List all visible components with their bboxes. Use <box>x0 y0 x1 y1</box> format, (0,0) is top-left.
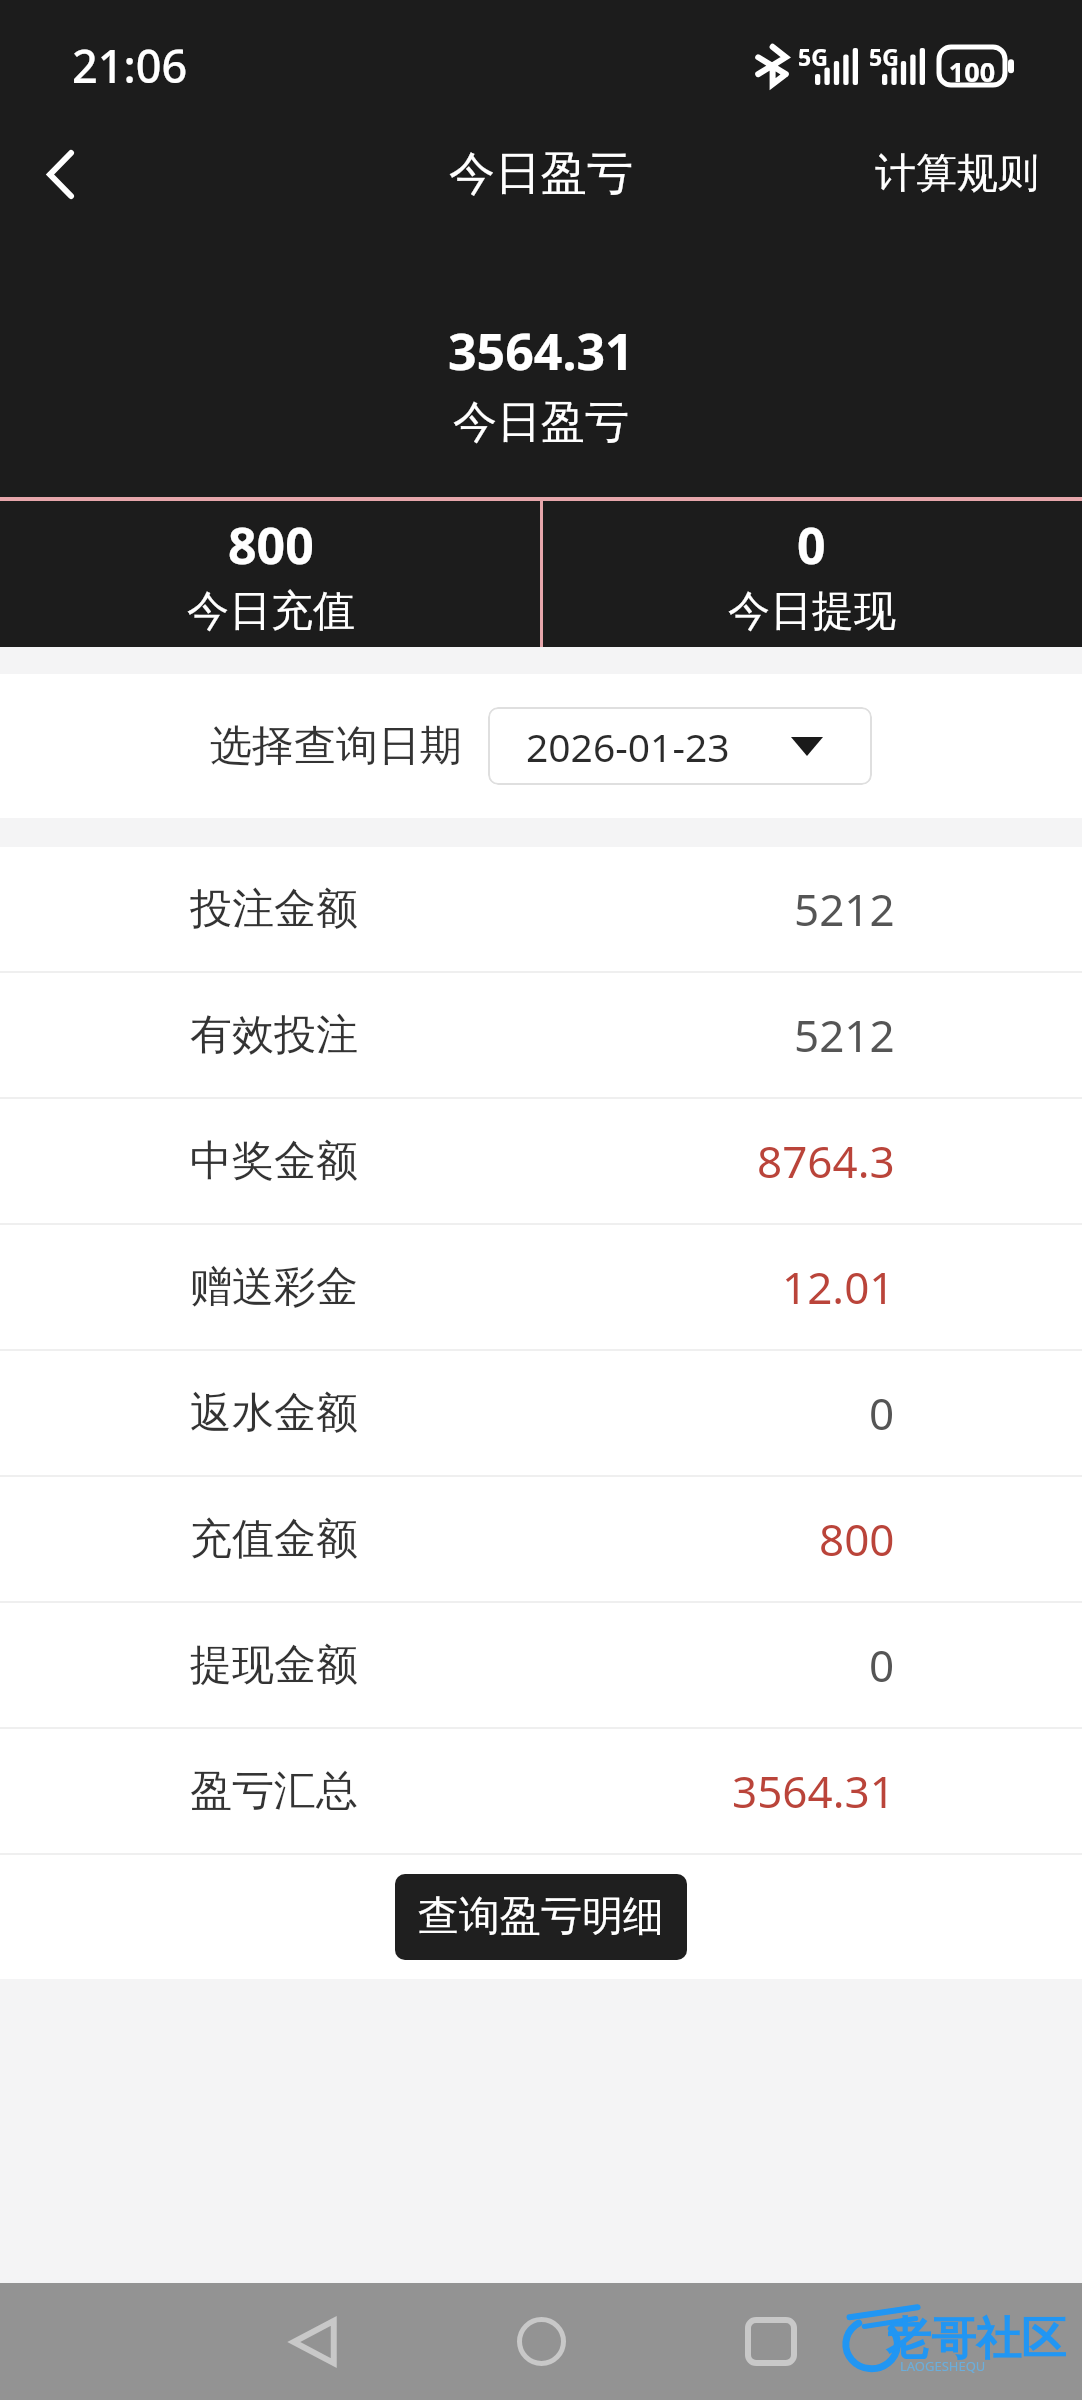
staticText: 100 <box>939 53 1005 90</box>
staticText: 0 <box>797 511 826 567</box>
button[interactable]: Back <box>251 2283 371 2400</box>
button[interactable]: 中奖金额 <box>0 1099 1082 1223</box>
staticText: 今日盈亏 <box>453 395 629 450</box>
button[interactable]: 盈亏汇总 <box>0 1729 1082 1853</box>
staticText: 提现金额 <box>190 1639 358 1692</box>
staticText: 21:06 <box>72 35 188 95</box>
staticText: 3564.31 <box>732 1761 895 1821</box>
button[interactable]: Recent apps <box>711 2283 831 2400</box>
staticText: 5212 <box>794 1005 895 1065</box>
staticText: 老哥社区 <box>886 2311 1066 2368</box>
staticText: 2026-01-23 <box>526 720 730 773</box>
button[interactable]: 返水金额 <box>0 1351 1082 1475</box>
button[interactable]: 2026-01-23 <box>488 707 872 785</box>
staticText: 12.01 <box>782 1257 895 1317</box>
staticText: 5212 <box>794 879 895 939</box>
button[interactable]: 800 <box>0 501 541 647</box>
staticText: 赠送彩金 <box>190 1261 358 1314</box>
staticText: 有效投注 <box>190 1009 358 1062</box>
staticText: 800 <box>819 1509 895 1569</box>
staticText: 今日提现 <box>728 585 896 638</box>
button[interactable]: Back <box>0 115 118 233</box>
button[interactable]: 提现金额 <box>0 1603 1082 1727</box>
button[interactable]: Home <box>481 2283 601 2400</box>
staticText: 5G <box>798 41 828 72</box>
staticText: 5G <box>869 41 899 72</box>
staticText: 3564.31 <box>448 317 634 377</box>
button[interactable]: 充值金额 <box>0 1477 1082 1601</box>
staticText: 今日充值 <box>187 585 355 638</box>
staticText: 查询盈亏明细 <box>418 1891 664 1943</box>
button[interactable]: 有效投注 <box>0 973 1082 1097</box>
staticText: 8764.3 <box>757 1131 895 1191</box>
staticText: 0 <box>869 1635 895 1695</box>
staticText: 计算规则 <box>875 148 1039 200</box>
staticText: 返水金额 <box>190 1387 358 1440</box>
staticText: 800 <box>228 511 314 567</box>
staticText: 今日盈亏 <box>449 145 633 203</box>
button[interactable]: 计算规则 <box>832 126 1082 222</box>
button[interactable]: 0 <box>541 501 1082 647</box>
staticText: 中奖金额 <box>190 1135 358 1188</box>
staticText: 盈亏汇总 <box>190 1765 358 1818</box>
staticText: LAOGESHEQU <box>900 2357 986 2375</box>
button[interactable]: 查询盈亏明细 <box>395 1874 687 1960</box>
staticText: 0 <box>869 1383 895 1443</box>
staticText: 投注金额 <box>190 883 358 936</box>
button[interactable]: 赠送彩金 <box>0 1225 1082 1349</box>
staticText: 选择查询日期 <box>210 720 462 773</box>
button[interactable]: 投注金额 <box>0 847 1082 971</box>
staticText: 充值金额 <box>190 1513 358 1566</box>
